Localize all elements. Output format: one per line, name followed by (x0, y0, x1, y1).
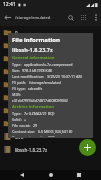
button[interactable]: 0 (0, 26, 101, 39)
staticText: General information (12, 55, 55, 61)
button[interactable]: Home (44, 170, 58, 180)
staticText: 7z (LZMA2/21 BCJ) (24, 111, 55, 116)
staticText: Type: (12, 111, 22, 116)
staticText: 6.0 MB (5,924,641 B) (38, 129, 73, 134)
button[interactable]: Music (0, 91, 101, 104)
button[interactable]: View mode (77, 11, 90, 24)
staticText: FS path: (12, 80, 27, 85)
button[interactable]: DCIM (0, 52, 101, 65)
button[interactable]: Android (0, 39, 101, 52)
button[interactable]: 0.7z (0, 130, 101, 143)
staticText: Last modification: (12, 74, 45, 79)
staticText: FS type: (12, 86, 26, 91)
staticText: 12:41 (3, 1, 16, 8)
staticText: Compression ratio: (12, 135, 46, 137)
button[interactable]: Recents (72, 170, 86, 180)
button[interactable]: Back (15, 170, 29, 180)
staticText: File information (12, 36, 60, 44)
staticText: 3/25/20 10:07:11 AM (47, 74, 82, 79)
staticText: Music (15, 95, 28, 101)
staticText: sdcardfs (28, 86, 43, 91)
staticText: c31cbf7f97b3d74817d608099032 (12, 98, 68, 103)
button[interactable]: Back (0, 10, 15, 25)
staticText: DCIM (15, 56, 27, 62)
staticText: Android (15, 43, 32, 49)
staticText: Type: (12, 62, 22, 67)
button[interactable]: Add (79, 139, 96, 156)
button[interactable]: More options (90, 12, 101, 23)
staticText: 29 (33, 123, 38, 128)
staticText: Solid: (12, 117, 22, 122)
button[interactable]: libssh-1.8.23.7z (0, 143, 101, 156)
staticText: 0 (15, 30, 18, 36)
staticText: Content size: (12, 129, 36, 134)
staticText: Archive information (12, 104, 54, 110)
staticText: /storage/emulated (29, 80, 61, 85)
staticText: /storage/emulated (15, 15, 51, 20)
button[interactable]: Pictures (0, 104, 101, 117)
staticText: + (24, 117, 27, 122)
staticText: Ringtones (15, 121, 37, 127)
staticText: 978.3 kB (978 KiB) (22, 68, 53, 73)
button[interactable]: Movies (0, 78, 101, 91)
button[interactable]: Download (0, 65, 101, 78)
button[interactable]: Search (64, 11, 77, 24)
staticText: application/x-7z-compressed (24, 62, 73, 67)
staticText: 0.7z (15, 134, 24, 140)
staticText: MD5: (12, 92, 22, 97)
staticText: Download (15, 69, 37, 75)
staticText: 16% (48, 135, 56, 137)
staticText: Size: (12, 68, 20, 73)
staticText: libssh-1.8.23.7z (15, 147, 48, 153)
button[interactable]: Ringtones (0, 117, 101, 130)
staticText: Pictures (15, 108, 32, 114)
staticText: File count: (12, 123, 31, 128)
staticText: Movies (15, 82, 30, 88)
staticText: libssh-1.8.23.7z (12, 46, 53, 53)
